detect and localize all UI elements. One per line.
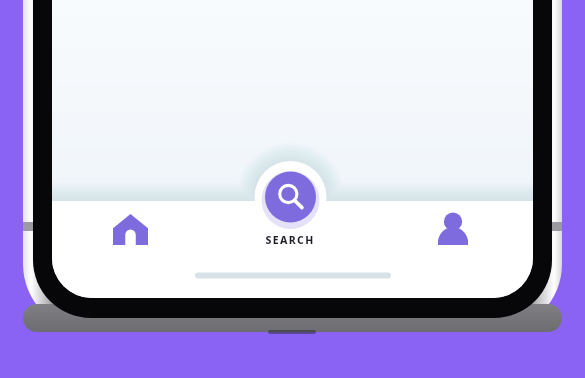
button[interactable]: Profile	[400, 201, 533, 298]
button[interactable]: Home	[60, 201, 210, 298]
button[interactable]: Search	[240, 168, 341, 298]
